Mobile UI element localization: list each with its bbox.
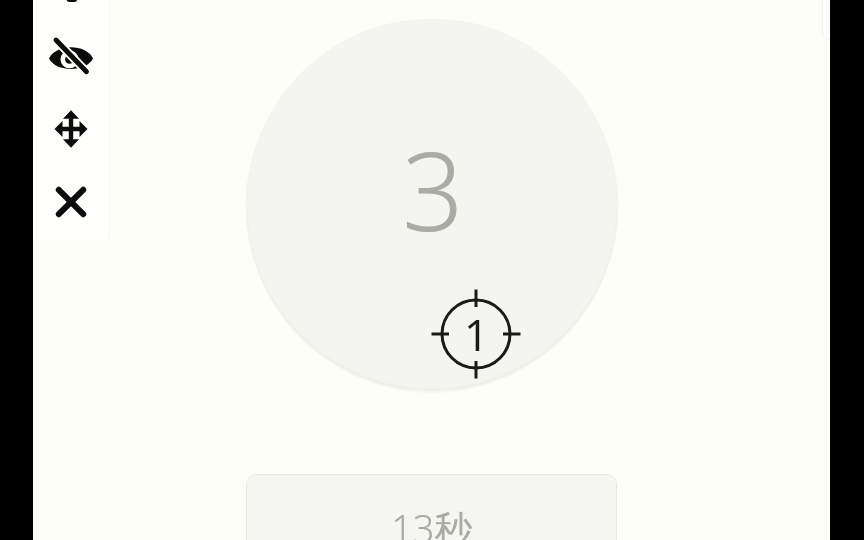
- staticText: 3: [402, 116, 464, 263]
- button[interactable]: 13秒: [246, 474, 617, 540]
- staticText: 1: [464, 305, 489, 364]
- staticText: 13秒: [391, 502, 473, 540]
- button[interactable]: Move: [41, 99, 101, 159]
- button[interactable]: Tap point 1: [422, 280, 530, 388]
- button[interactable]: Hide: [41, 26, 101, 86]
- button[interactable]: Close: [41, 172, 101, 232]
